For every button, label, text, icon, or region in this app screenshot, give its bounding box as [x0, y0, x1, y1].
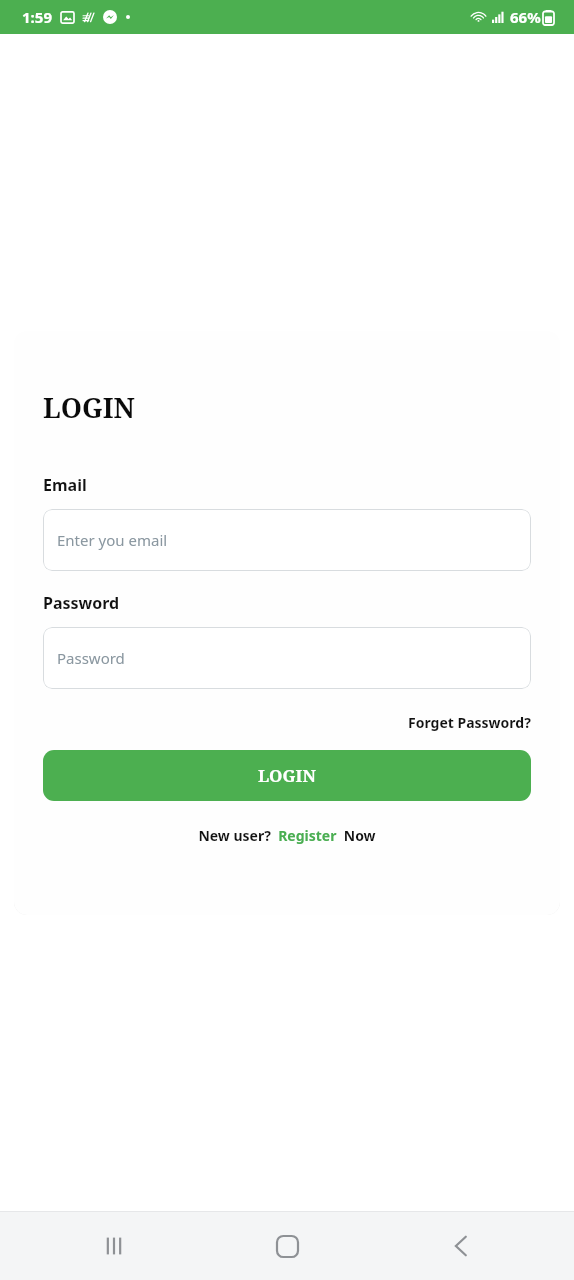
button[interactable]: Recent apps: [54, 1212, 174, 1280]
staticText: LOGIN: [258, 764, 316, 787]
button[interactable]: Forget Password?: [408, 713, 531, 732]
button[interactable]: Home: [227, 1212, 347, 1280]
button[interactable]: LOGIN: [43, 750, 531, 801]
button[interactable]: New user? Register Now: [43, 826, 531, 845]
staticText: Password: [57, 648, 125, 668]
staticText: Email: [43, 474, 87, 496]
staticText: 66%: [510, 7, 541, 27]
button[interactable]: Enter you email: [43, 509, 531, 571]
staticText: Enter you email: [57, 530, 168, 550]
staticText: 1:59: [22, 7, 52, 27]
staticText: Forget Password?: [408, 713, 531, 732]
staticText: LOGIN: [43, 389, 135, 426]
staticText: New user? Register Now: [198, 826, 376, 845]
staticText: Password: [43, 592, 120, 614]
button[interactable]: Password: [43, 627, 531, 689]
button[interactable]: Back: [401, 1212, 521, 1280]
